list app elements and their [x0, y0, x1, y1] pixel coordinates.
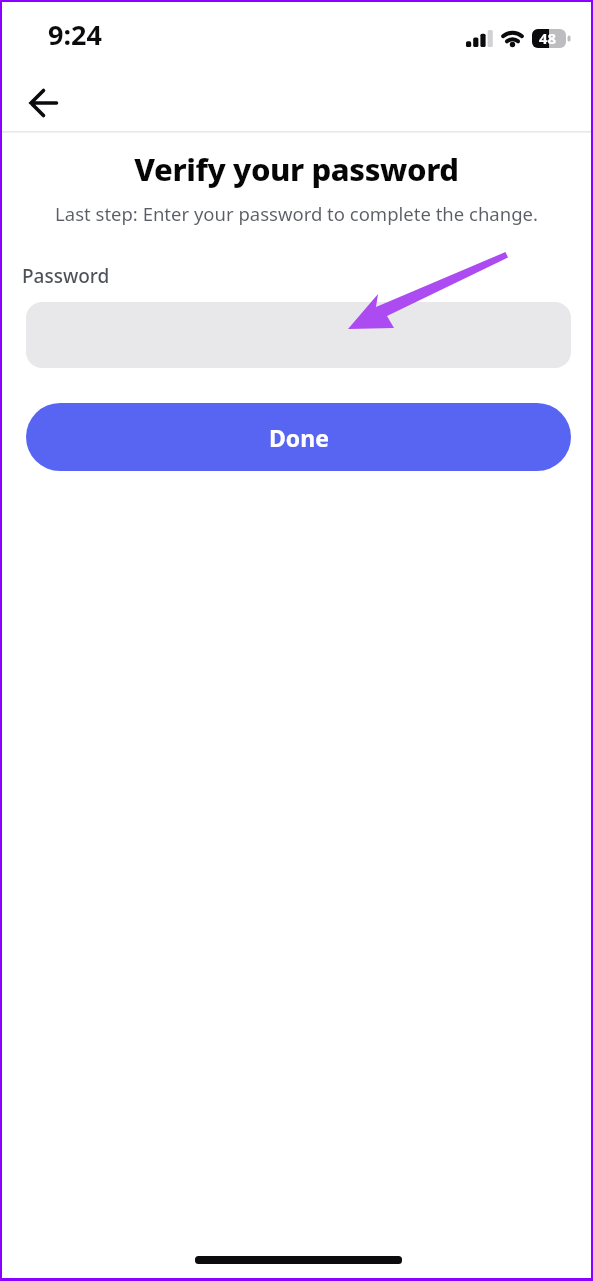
staticText: Done	[269, 422, 329, 453]
button[interactable]	[26, 302, 571, 368]
staticText: Verify your password	[134, 148, 459, 190]
staticText: Password	[22, 263, 110, 289]
button[interactable]: Done	[26, 403, 571, 471]
button[interactable]	[17, 77, 69, 129]
staticText: Last step: Enter your password to comple…	[55, 201, 538, 226]
staticText: 9:24	[48, 16, 102, 53]
staticText: 48	[539, 28, 557, 48]
